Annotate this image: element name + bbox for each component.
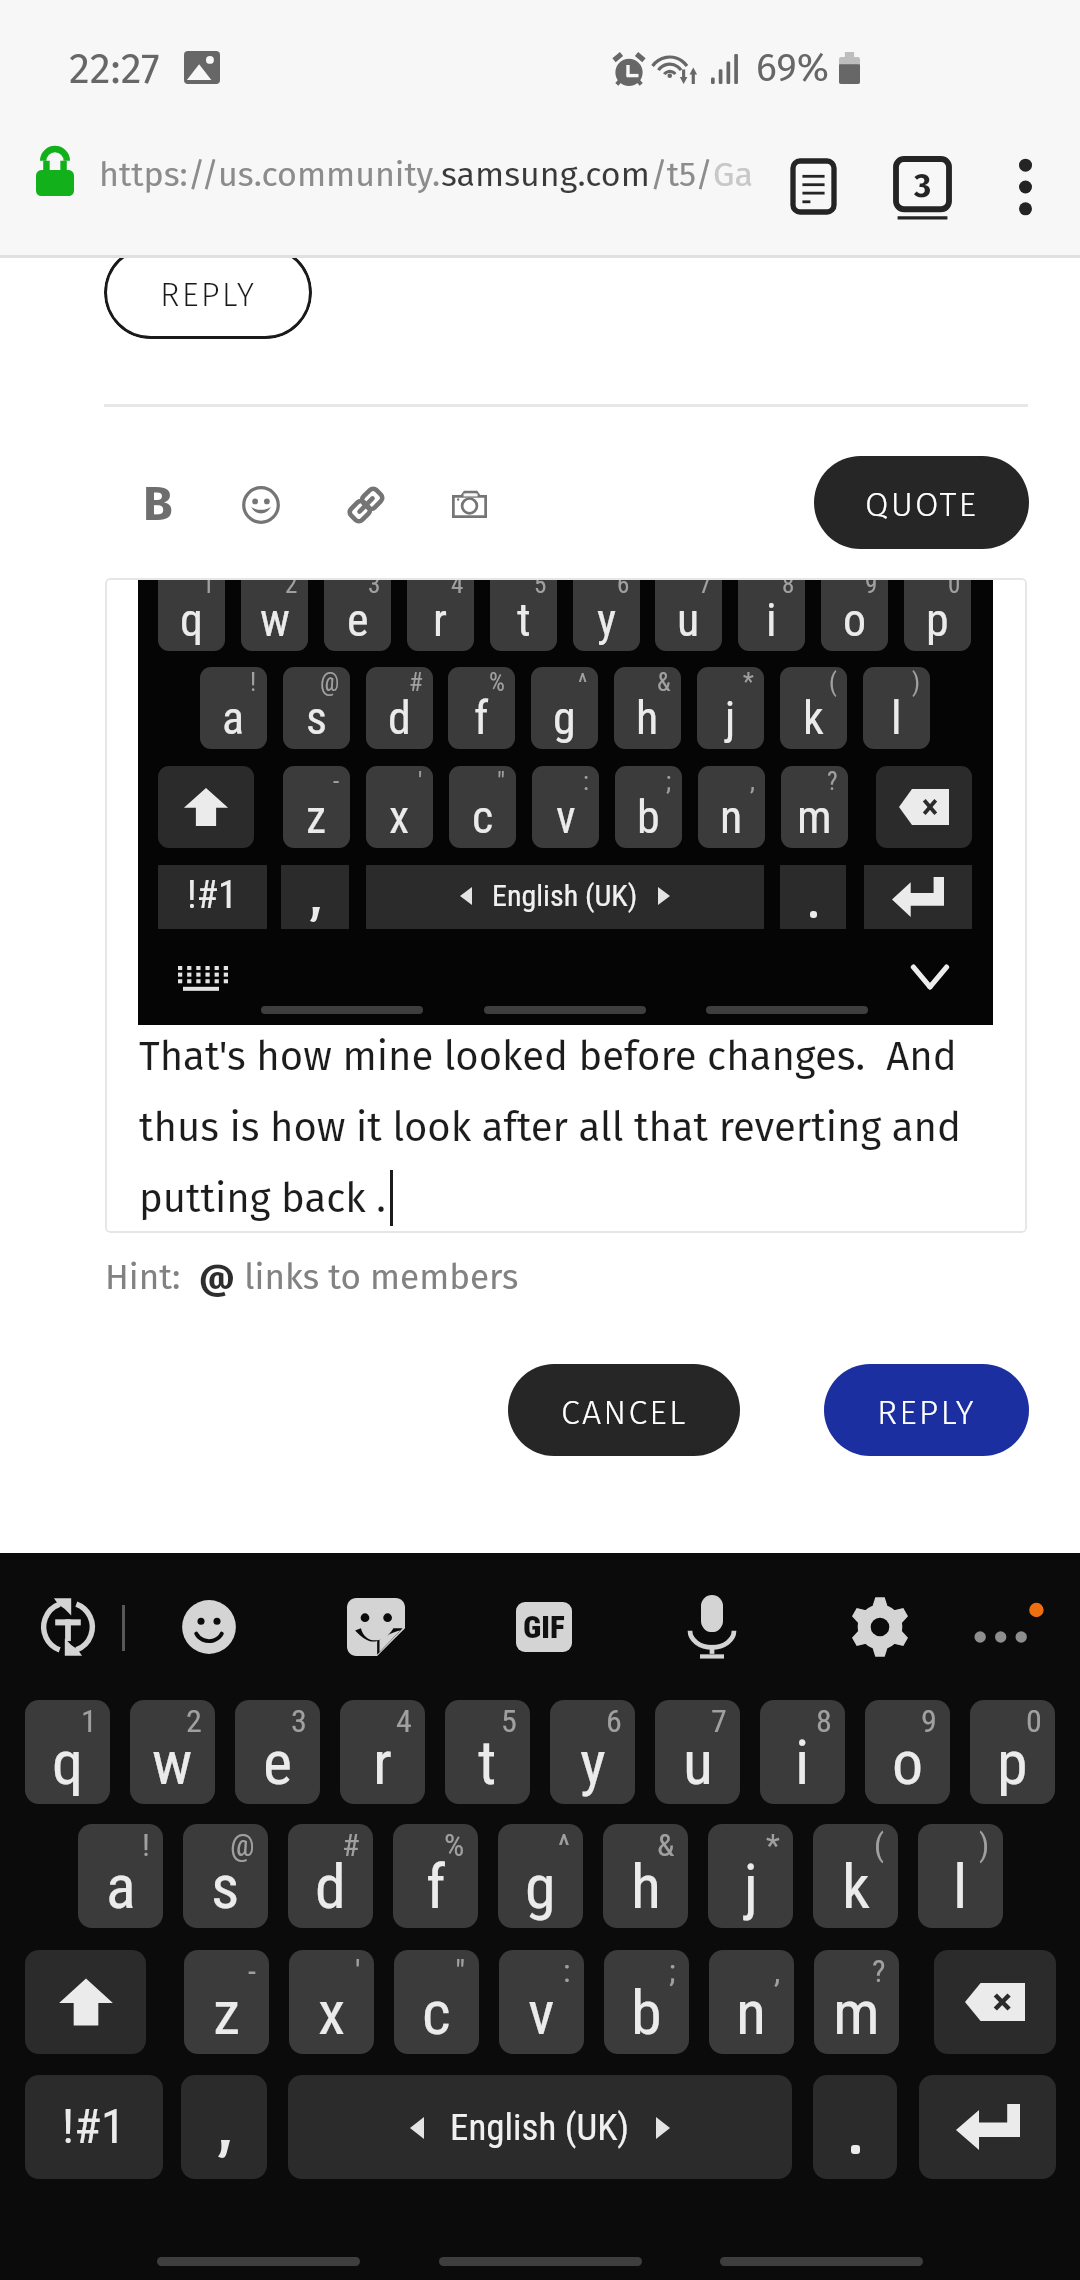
button[interactable]: 1 xyxy=(25,1700,110,1804)
staticText: j xyxy=(744,1850,758,1923)
button[interactable]: % xyxy=(393,1824,478,1928)
staticText: !#1 xyxy=(187,872,238,918)
button[interactable]: 1 xyxy=(105,578,1027,1233)
staticText: x xyxy=(318,1976,346,2049)
staticText: 6 xyxy=(617,580,630,599)
staticText: b xyxy=(631,1976,662,2049)
staticText: B xyxy=(143,475,173,533)
staticText: n xyxy=(736,1976,767,2049)
button[interactable]: Shift xyxy=(25,1950,146,2054)
button[interactable]: 8 xyxy=(760,1700,845,1804)
staticText: l xyxy=(953,1850,968,1923)
button[interactable]: Insert photo xyxy=(432,462,508,548)
button[interactable]: - xyxy=(184,1950,269,2054)
button[interactable]: Translate xyxy=(22,1581,114,1673)
staticText: b xyxy=(637,790,660,844)
staticText: s xyxy=(211,1850,240,1923)
button[interactable]: CANCEL xyxy=(508,1364,740,1456)
staticText: i xyxy=(766,593,777,647)
button[interactable]: Emoji xyxy=(224,462,300,548)
button[interactable]: Stickers xyxy=(330,1581,422,1673)
button[interactable]: # xyxy=(288,1824,373,1928)
button[interactable]: Reader mode xyxy=(758,132,868,242)
staticText: 7 xyxy=(711,1702,727,1740)
button[interactable]: Backspace xyxy=(934,1950,1056,2054)
button[interactable]: ) xyxy=(918,1824,1003,1928)
button[interactable] xyxy=(181,2075,267,2179)
staticText: https://us.community. xyxy=(99,154,441,195)
button[interactable]: ? xyxy=(814,1950,899,2054)
button[interactable]: 9 xyxy=(865,1700,950,1804)
button[interactable]: English (UK) xyxy=(288,2075,792,2179)
button[interactable]: Bold xyxy=(120,462,196,546)
staticText: That's how mine looked before changes. A… xyxy=(139,1033,957,1081)
staticText: o xyxy=(892,1726,924,1799)
staticText: k xyxy=(842,1850,870,1923)
staticText: y xyxy=(580,1726,606,1799)
staticText: @ xyxy=(199,1256,235,1298)
button[interactable]: !#1 xyxy=(25,2075,163,2179)
staticText: ? xyxy=(872,1952,886,1990)
staticText: 8 xyxy=(816,1702,832,1740)
button[interactable]: More keyboard options xyxy=(960,1581,1052,1673)
staticText: /t5/ xyxy=(650,154,713,195)
button[interactable]: 7 xyxy=(655,1700,740,1804)
staticText: thus is how it look after all that rever… xyxy=(139,1104,961,1152)
button[interactable]: REPLY xyxy=(824,1364,1029,1456)
staticText: g xyxy=(525,1850,556,1923)
staticText: ) xyxy=(912,668,920,697)
button[interactable]: 2 xyxy=(130,1700,215,1804)
button[interactable]: " xyxy=(394,1950,479,2054)
button[interactable]: : xyxy=(499,1950,584,2054)
button[interactable]: Voice input xyxy=(666,1581,758,1673)
staticText: q xyxy=(180,593,204,647)
button[interactable]: 0 xyxy=(970,1700,1055,1804)
staticText: , xyxy=(750,767,755,796)
button[interactable]: ' xyxy=(289,1950,374,2054)
button[interactable]: Keyboard settings xyxy=(834,1581,926,1673)
button[interactable]: ; xyxy=(604,1950,689,2054)
staticText: g xyxy=(553,691,576,745)
button[interactable]: 5 xyxy=(445,1700,530,1804)
button[interactable]: ^ xyxy=(498,1824,583,1928)
staticText: 2 xyxy=(285,580,298,599)
button[interactable]: Emoji xyxy=(163,1581,255,1673)
staticText: v xyxy=(528,1976,555,2049)
button[interactable]: Insert link xyxy=(328,462,404,548)
staticText: 9 xyxy=(865,580,878,599)
staticText: w xyxy=(260,593,290,647)
button[interactable]: ( xyxy=(813,1824,898,1928)
button[interactable] xyxy=(813,2075,897,2179)
button[interactable]: * xyxy=(708,1824,793,1928)
staticText: e xyxy=(347,593,369,647)
button[interactable]: QUOTE xyxy=(814,456,1029,549)
button[interactable]: @ xyxy=(183,1824,268,1928)
button[interactable]: , xyxy=(709,1950,794,2054)
staticText: q xyxy=(52,1726,84,1799)
staticText: samsung.com xyxy=(441,154,650,195)
staticText: 9 xyxy=(921,1702,937,1740)
staticText: a xyxy=(106,1850,136,1923)
staticText: Ga xyxy=(713,154,753,195)
staticText: w xyxy=(152,1726,193,1799)
staticText: QUOTE xyxy=(865,484,979,525)
button[interactable]: & xyxy=(603,1824,688,1928)
button[interactable]: More options xyxy=(975,132,1075,242)
button[interactable]: ! xyxy=(78,1824,163,1928)
button[interactable]: Tabs xyxy=(865,132,975,242)
button[interactable]: REPLY xyxy=(104,246,312,339)
button[interactable]: 6 xyxy=(550,1700,635,1804)
staticText: 4 xyxy=(451,580,464,599)
staticText: 8 xyxy=(782,580,795,599)
staticText: c xyxy=(472,790,494,844)
button[interactable]: 4 xyxy=(340,1700,425,1804)
staticText: ^ xyxy=(578,668,588,697)
staticText: - xyxy=(333,767,340,796)
staticText: ! xyxy=(250,668,257,697)
staticText: z xyxy=(306,790,327,844)
staticText: English (UK) xyxy=(492,878,638,913)
staticText: ( xyxy=(874,1826,885,1864)
button[interactable]: Enter xyxy=(919,2075,1056,2179)
button[interactable]: 3 xyxy=(235,1700,320,1804)
button[interactable]: GIF xyxy=(498,1581,590,1673)
